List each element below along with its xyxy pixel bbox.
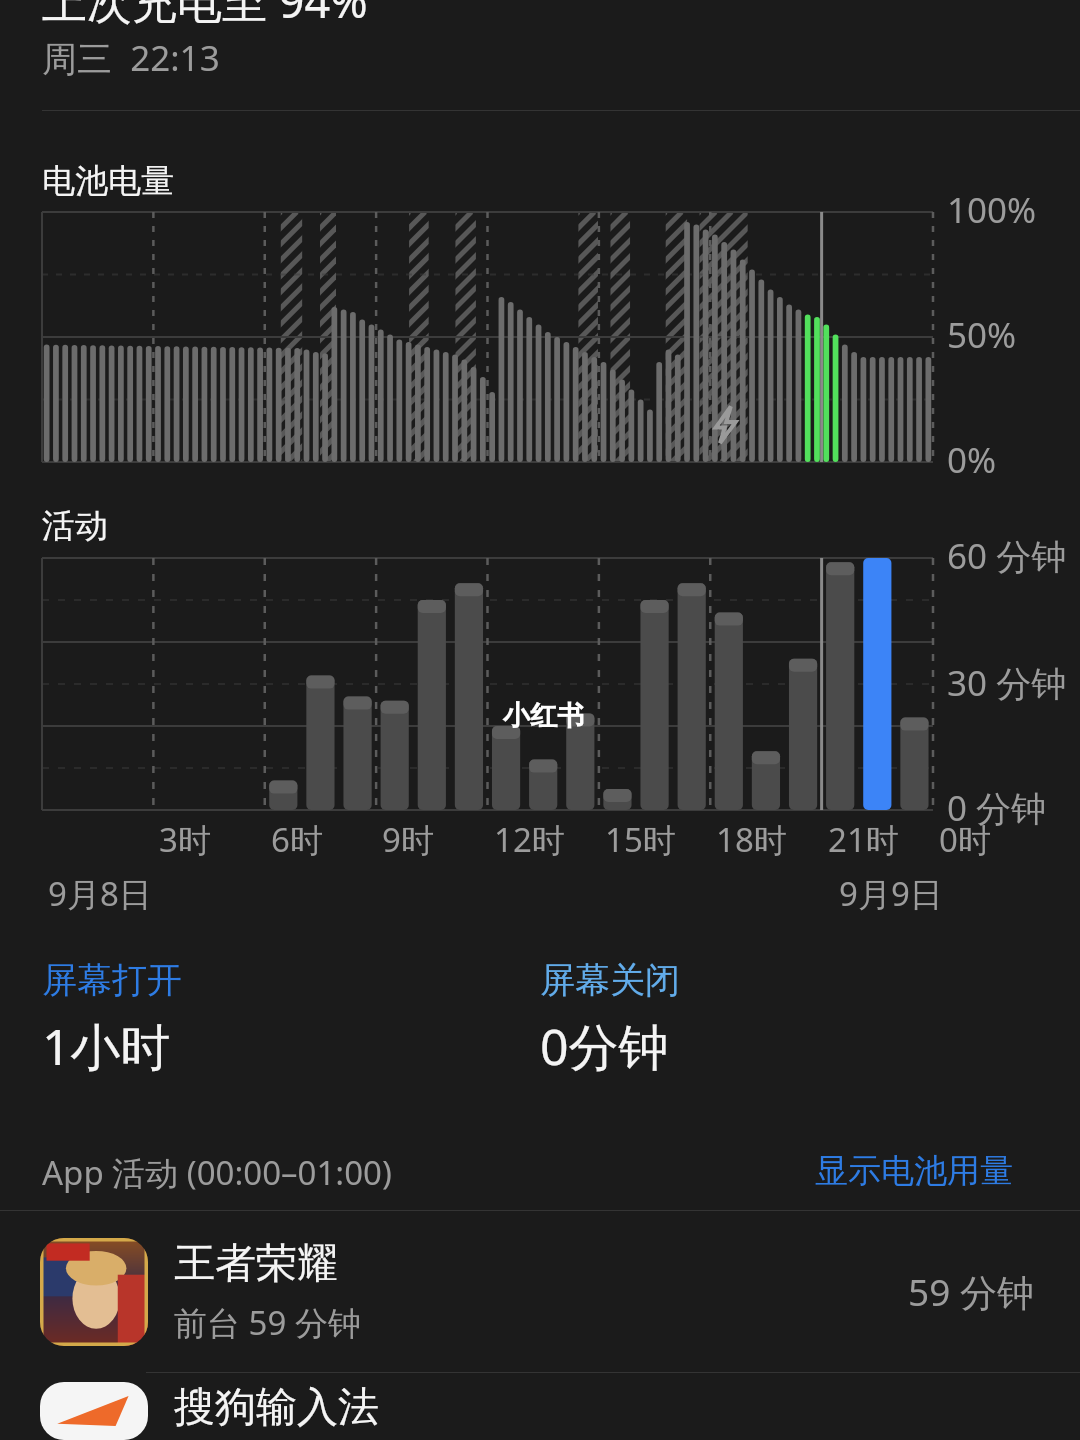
staticText: 前台 59 分钟 [174, 1300, 361, 1345]
staticText: 12时 [494, 817, 565, 862]
staticText: 9月8日 [48, 871, 152, 916]
staticText: 搜狗输入法 [174, 1382, 379, 1434]
staticText: 上次充电至 94% [42, 0, 368, 31]
button[interactable]: 屏幕关闭 [540, 958, 680, 1080]
staticText: 60 分钟 [947, 532, 1067, 580]
staticText: 9时 [382, 817, 434, 862]
other: 搜狗输入法 [40, 1382, 148, 1440]
button[interactable]: 搜狗输入法 [0, 1382, 1080, 1440]
button[interactable]: 王者荣耀 [0, 1211, 1080, 1372]
staticText: 0 分钟 [947, 784, 1047, 832]
other: 王者荣耀 [40, 1238, 148, 1346]
staticText: 0% [947, 436, 997, 484]
staticText: 显示电池用量 [815, 1150, 1013, 1192]
staticText: 30 分钟 [947, 659, 1067, 707]
staticText: 0时 [939, 817, 991, 862]
button[interactable]: 屏幕打开 [42, 958, 182, 1080]
staticText: 15时 [605, 817, 676, 862]
staticText: 0分钟 [540, 1012, 669, 1080]
staticText: 电池电量 [42, 160, 174, 202]
staticText: 6时 [271, 817, 323, 862]
staticText: App 活动 (00:00–01:00) [42, 1150, 392, 1195]
staticText: 21时 [828, 817, 899, 862]
staticText: 59 分钟 [908, 1266, 1034, 1317]
staticText: 小红书 [503, 699, 584, 733]
staticText: 50% [947, 311, 1017, 359]
staticText: 9月9日 [839, 871, 943, 916]
staticText: 王者荣耀 [174, 1238, 338, 1290]
staticText: 屏幕关闭 [540, 958, 680, 1002]
staticText: 1小时 [42, 1012, 171, 1080]
staticText: 3时 [159, 817, 211, 862]
staticText: 屏幕打开 [42, 958, 182, 1002]
staticText: 100% [947, 186, 1037, 234]
staticText: 18时 [716, 817, 787, 862]
staticText: 周三 22:13 [42, 34, 220, 82]
staticText: 活动 [42, 505, 108, 547]
button[interactable]: 显示电池用量 [815, 1150, 1013, 1192]
